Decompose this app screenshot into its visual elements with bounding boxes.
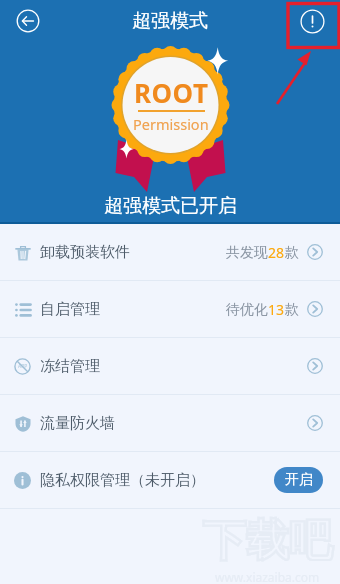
staticText: 开启 <box>285 471 313 489</box>
staticText: www.xiazaiba.com <box>215 569 320 584</box>
staticText: 13 <box>268 300 285 319</box>
button[interactable]: Back <box>0 0 55 42</box>
button[interactable]: 自启管理 <box>0 281 340 337</box>
staticText: ROOT <box>134 75 209 110</box>
staticText: 款 <box>285 244 299 262</box>
button[interactable]: 流量防火墙 <box>0 395 340 451</box>
button[interactable]: Info <box>285 0 340 42</box>
staticText: 共发现 <box>226 244 268 262</box>
button[interactable]: 开启 <box>274 467 323 493</box>
staticText: 下载吧 <box>203 514 332 568</box>
staticText: 超强模式 <box>132 9 208 33</box>
staticText: 超强模式已开启 <box>104 194 237 218</box>
staticText: 款 <box>285 301 299 319</box>
button[interactable]: 隐私权限管理（未开启） <box>0 452 340 508</box>
button[interactable]: APP <box>0 338 340 394</box>
staticText: 隐私权限管理（未开启） <box>40 471 205 490</box>
staticText: APP <box>18 363 28 370</box>
staticText: Permission <box>133 114 209 134</box>
staticText: 28 <box>268 243 285 262</box>
staticText: 待优化 <box>226 301 268 319</box>
staticText: 卸载预装软件 <box>40 243 130 262</box>
staticText: 冻结管理 <box>40 357 100 376</box>
staticText: 流量防火墙 <box>40 414 115 433</box>
staticText: 自启管理 <box>40 300 100 319</box>
button[interactable]: 卸载预装软件 <box>0 224 340 280</box>
